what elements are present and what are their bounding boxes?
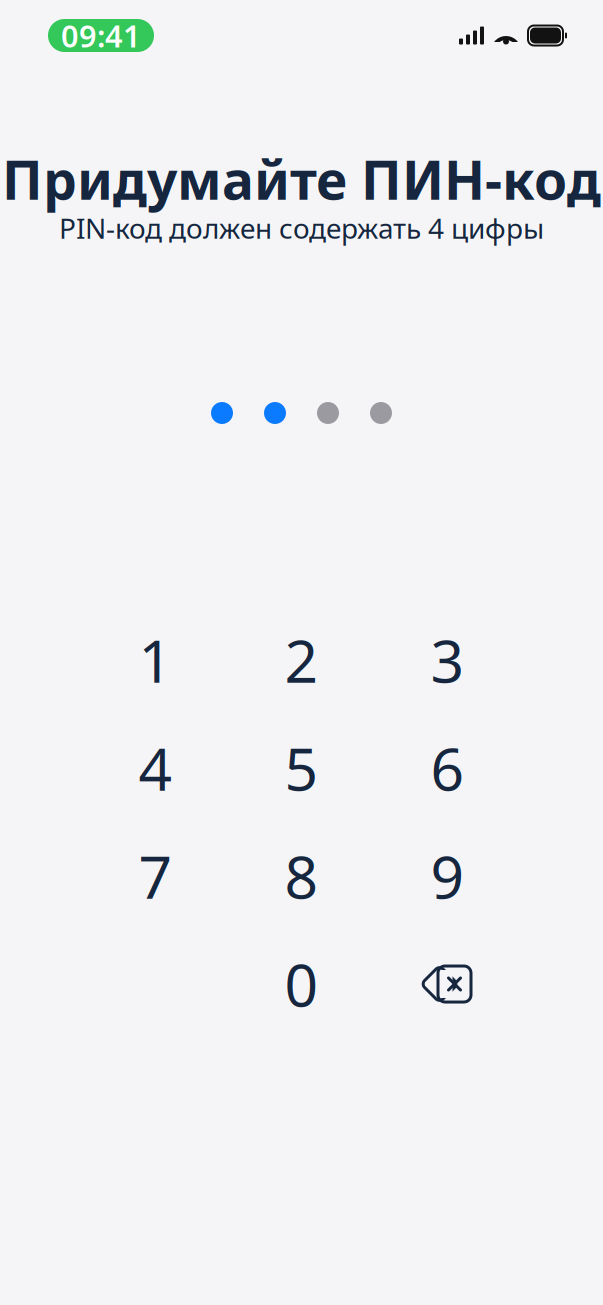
button[interactable]: 6 [393, 714, 501, 822]
button[interactable]: 4 [101, 714, 209, 822]
staticText: 0 [284, 945, 318, 1023]
button[interactable]: 8 [247, 822, 355, 930]
button[interactable]: 9 [393, 822, 501, 930]
staticText: 09:41 [61, 15, 141, 56]
staticText: 5 [284, 729, 318, 807]
staticText: 4 [138, 729, 172, 807]
staticText: 3 [430, 621, 464, 699]
button[interactable]: Удалить [393, 930, 501, 1038]
staticText: PIN-код должен содержать 4 цифры [59, 209, 544, 247]
staticText: 8 [284, 837, 318, 915]
button[interactable]: 5 [247, 714, 355, 822]
staticText: 9 [430, 837, 464, 915]
button[interactable]: 7 [101, 822, 209, 930]
staticText: 2 [284, 621, 318, 699]
button[interactable]: 2 [247, 606, 355, 714]
button[interactable]: 3 [393, 606, 501, 714]
staticText: 6 [430, 729, 464, 807]
button[interactable]: 1 [101, 606, 209, 714]
staticText: Придумайте ПИН-код [2, 144, 601, 214]
button[interactable]: 0 [247, 930, 355, 1038]
staticText: 1 [138, 621, 172, 699]
staticText: 7 [138, 837, 172, 915]
